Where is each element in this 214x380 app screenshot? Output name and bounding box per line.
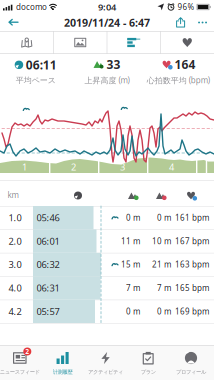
button[interactable]: プロフィール (171, 345, 214, 380)
staticText: 3.0 (8, 258, 21, 271)
staticText: 上昇高度 (m) (84, 75, 129, 85)
button[interactable]: Back (0, 14, 19, 31)
button[interactable]: Photos (53, 31, 107, 54)
staticText: 2 (71, 161, 76, 173)
staticText: 1.0 (8, 211, 21, 224)
staticText: 05:57 (36, 305, 59, 317)
staticText: 165 bpm (175, 283, 209, 293)
staticText: 0 m (126, 212, 140, 223)
staticText: 心拍数平均 (bpm) (147, 75, 210, 85)
staticText: プラン (141, 369, 156, 375)
button[interactable]: Map (0, 31, 53, 54)
staticText: 164 (175, 56, 196, 72)
staticText: 0 m (126, 306, 140, 317)
staticText: 1 (22, 161, 27, 173)
staticText: 11 m (121, 236, 140, 246)
staticText: 06:11 (26, 57, 57, 73)
staticText: 21 m (152, 259, 171, 270)
staticText: アクティビティ (88, 369, 123, 375)
staticText: 2.0 (8, 235, 21, 247)
staticText: 0 m (157, 306, 171, 317)
staticText: 7 m (157, 283, 171, 293)
staticText: 10 m (152, 236, 171, 246)
button[interactable]: 2 (0, 345, 43, 380)
staticText: 169 bpm (175, 306, 209, 317)
staticText: 7 m (126, 283, 140, 293)
staticText: 2 (25, 347, 29, 356)
staticText: 平均ペース (16, 75, 56, 85)
staticText: 06:01 (36, 235, 59, 247)
button[interactable]: Share (170, 14, 191, 30)
button[interactable]: 計測履歴 (43, 345, 86, 380)
staticText: 96% (177, 2, 194, 12)
button[interactable]: Splits (107, 31, 160, 54)
staticText: 33 (106, 56, 120, 72)
staticText: km (7, 190, 18, 200)
staticText: 167 bpm (175, 236, 209, 246)
button[interactable]: Heart rate (160, 31, 214, 54)
staticText: ニュースフィード (0, 369, 40, 375)
staticText: 06:31 (36, 282, 59, 294)
staticText: 9:04 (98, 1, 116, 13)
staticText: プロフィール (176, 369, 206, 375)
staticText: 4 (169, 161, 174, 173)
staticText: 3 (120, 161, 125, 173)
staticText: 15 m (121, 259, 140, 270)
staticText: 2019/11/24 - 6:47 (64, 15, 150, 30)
staticText: 163 bpm (175, 259, 209, 270)
staticText: docomo (16, 2, 47, 12)
button[interactable]: アクティビティ (86, 345, 128, 380)
staticText: 05:46 (36, 211, 59, 224)
staticText: 0 m (157, 212, 171, 223)
button[interactable]: More (191, 16, 214, 29)
button[interactable]: プラン (128, 345, 171, 380)
staticText: 4.2 (8, 305, 21, 317)
staticText: 161 bpm (175, 212, 209, 223)
staticText: 4.0 (8, 282, 21, 294)
staticText: 06:32 (36, 258, 59, 271)
staticText: 計測履歴 (53, 369, 73, 375)
